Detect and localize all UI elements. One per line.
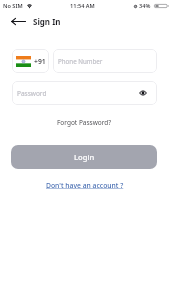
button[interactable]: Back bbox=[9, 13, 28, 29]
button[interactable]: Show password bbox=[137, 87, 149, 99]
button[interactable]: Phone Number bbox=[53, 49, 157, 73]
staticText: Password bbox=[17, 89, 47, 98]
staticText: 34% bbox=[139, 2, 151, 10]
button[interactable]: +91 bbox=[12, 49, 49, 73]
staticText: Phone Number bbox=[58, 57, 103, 65]
staticText: Sign In bbox=[33, 16, 61, 27]
staticText: Forgot Password? bbox=[57, 118, 112, 127]
staticText: 11:54 AM bbox=[70, 2, 95, 10]
staticText: Don't have an account ? bbox=[46, 181, 124, 190]
button[interactable]: Forgot Password? bbox=[52, 115, 117, 130]
button[interactable]: Don't have an account ? bbox=[41, 178, 129, 193]
staticText: Login bbox=[74, 152, 95, 162]
staticText: +91 bbox=[34, 57, 46, 66]
button[interactable]: Password bbox=[12, 81, 157, 105]
button[interactable]: Login bbox=[11, 145, 157, 169]
staticText: No SIM bbox=[3, 2, 23, 10]
